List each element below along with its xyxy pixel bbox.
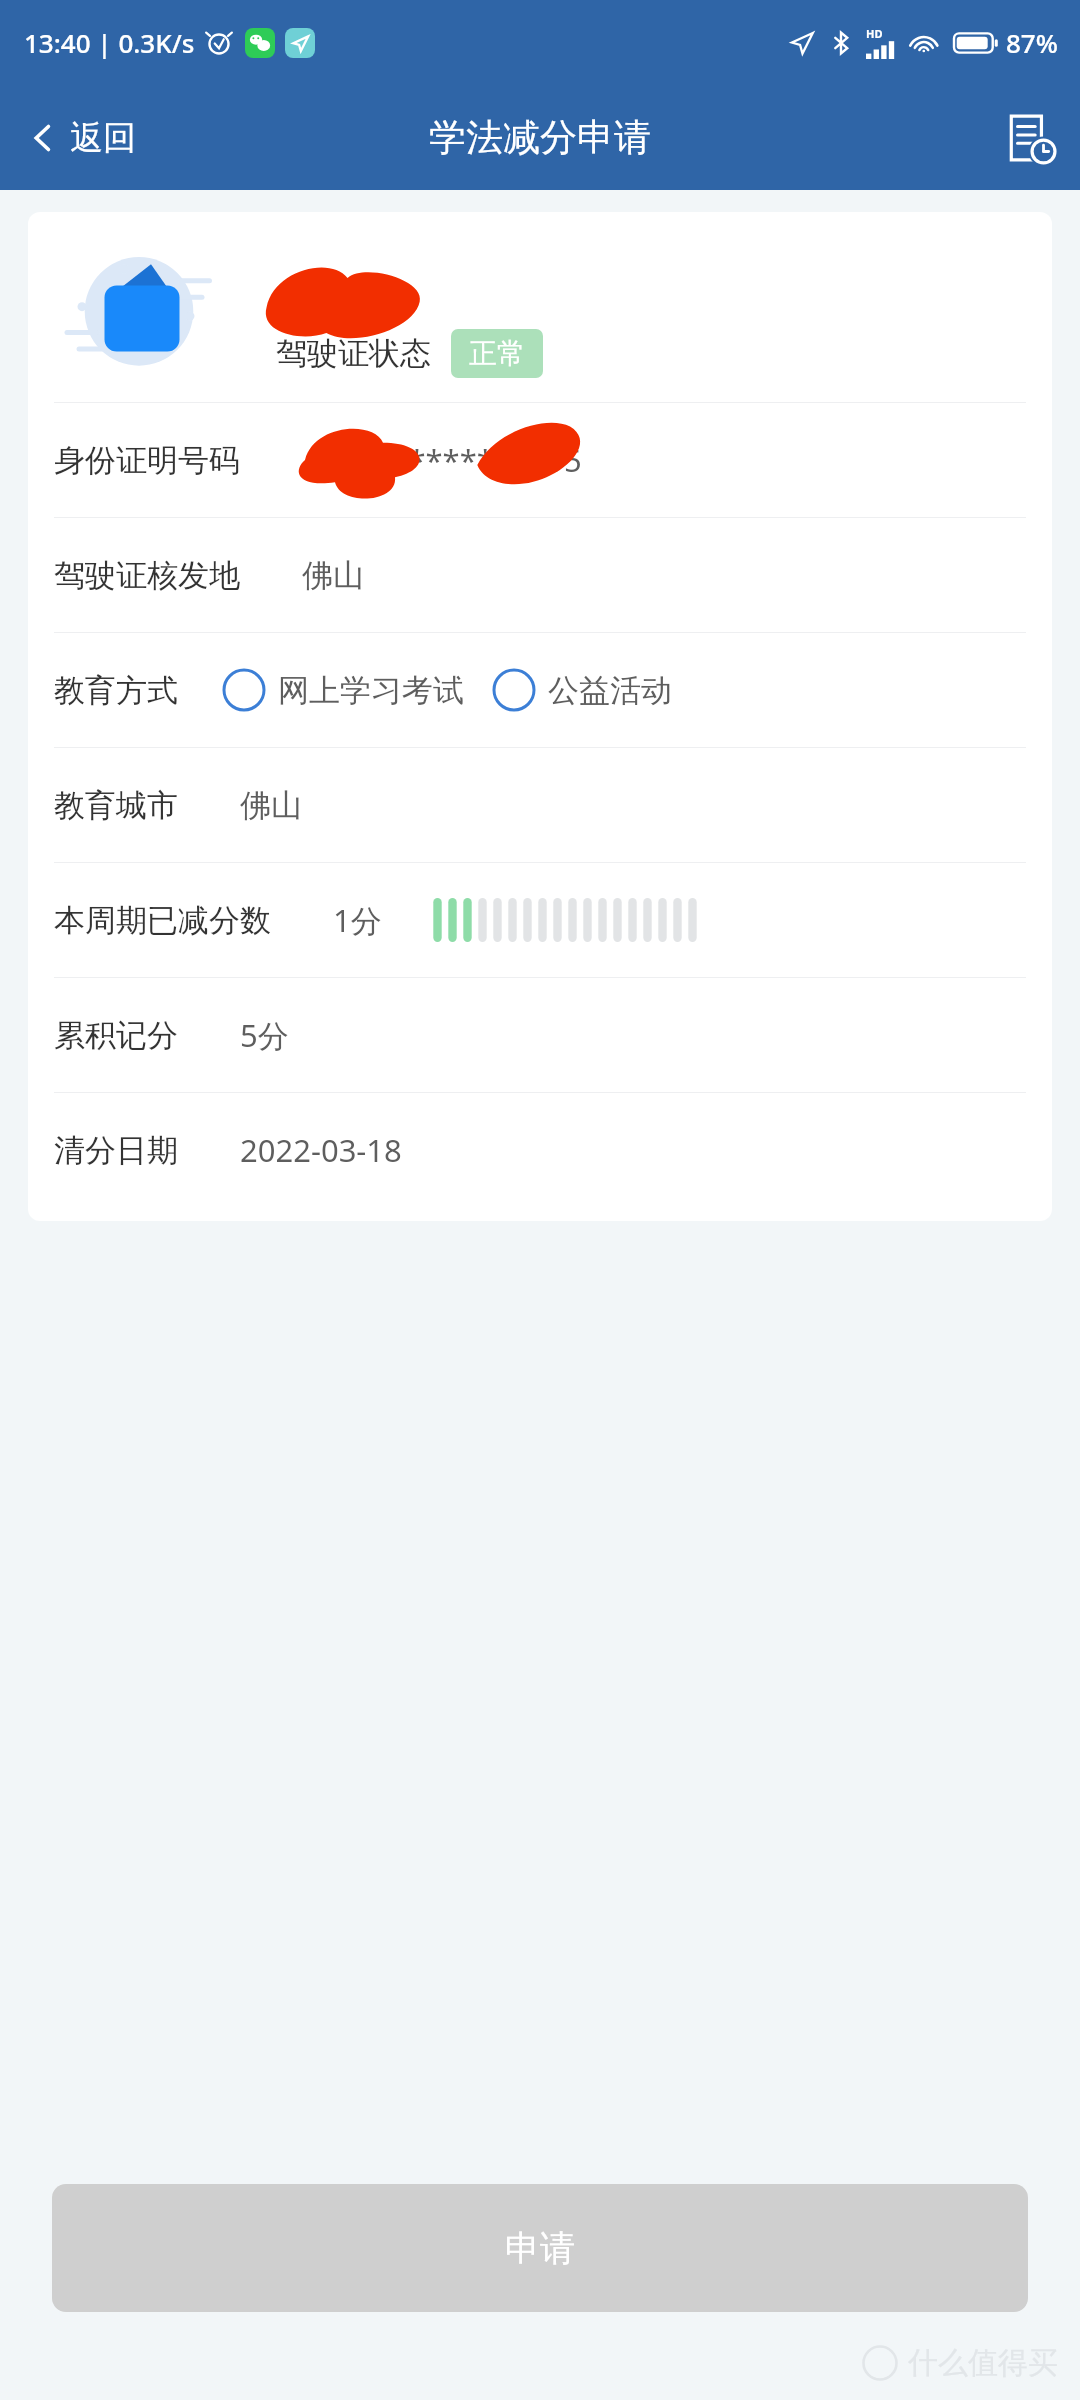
staticText: 清分日期	[54, 1131, 178, 1170]
button[interactable]: 申请	[52, 2184, 1028, 2312]
staticText: 学法减分申请	[429, 114, 651, 161]
staticText: 教育城市	[54, 786, 178, 825]
button[interactable]: 本周期已减分数	[28, 863, 1052, 977]
staticText: 驾驶证状态	[276, 334, 431, 373]
staticText: 2022-03-18	[240, 1129, 402, 1171]
button[interactable]: 网上学习考试	[222, 660, 464, 720]
button[interactable]: 清分日期	[28, 1093, 1052, 1207]
staticText: 累积记分	[54, 1016, 178, 1055]
staticText: 5分	[240, 1014, 289, 1056]
button[interactable]: 申请记录	[980, 98, 1080, 178]
button[interactable]: 教育方式	[28, 633, 1052, 747]
button[interactable]: 身份证明号码	[28, 403, 1052, 517]
staticText: 教育方式	[54, 671, 178, 710]
staticText: 申请	[505, 2226, 575, 2270]
staticText: HD	[866, 26, 883, 41]
staticText: 公益活动	[548, 671, 672, 710]
staticText: 驾驶证核发地	[54, 556, 240, 595]
staticText: 正常	[469, 336, 525, 371]
button[interactable]: 返回	[0, 105, 156, 171]
staticText: 佛山	[302, 556, 364, 595]
staticText: 本周期已减分数	[54, 901, 271, 940]
button[interactable]: 驾驶证核发地	[28, 518, 1052, 632]
staticText: 什么值得买	[908, 2344, 1058, 2382]
button[interactable]: 公益活动	[492, 660, 672, 720]
staticText: 1分	[333, 899, 382, 941]
button[interactable]: 累积记分	[28, 978, 1052, 1092]
staticText: 网上学习考试	[278, 671, 464, 710]
staticText: 87%	[1006, 25, 1058, 60]
staticText: 身份证明号码	[54, 441, 240, 480]
staticText: 佛山	[240, 786, 302, 825]
staticText: 返回	[70, 117, 136, 159]
staticText: 440621******3215	[302, 439, 582, 481]
staticText: 13:40 | 0.3K/s	[24, 25, 195, 60]
button[interactable]: 教育城市	[28, 748, 1052, 862]
